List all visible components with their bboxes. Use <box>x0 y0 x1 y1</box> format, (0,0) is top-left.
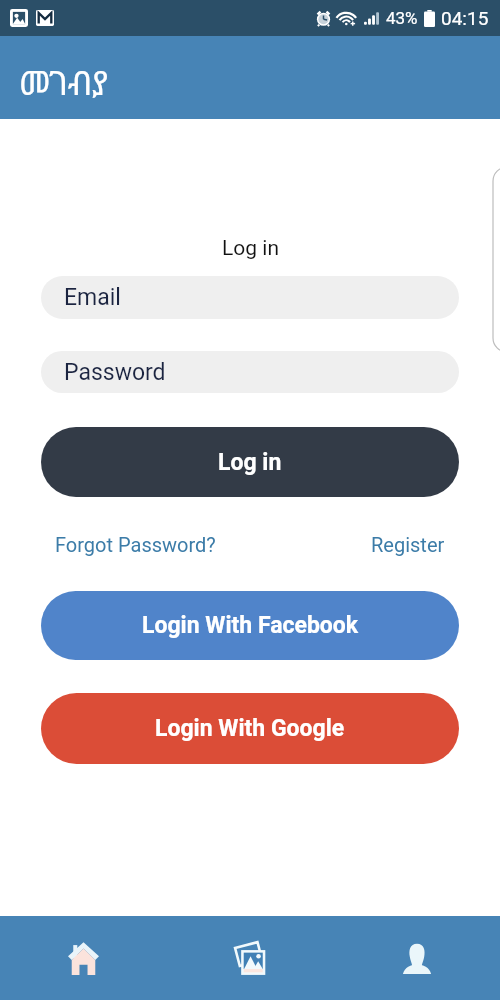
button[interactable]: Login With Facebook <box>41 591 459 660</box>
staticText: Log in <box>222 236 279 261</box>
button[interactable]: Home <box>0 916 166 1000</box>
staticText: Log in <box>218 449 282 476</box>
staticText: Register <box>371 533 445 556</box>
staticText: Login With Facebook <box>142 612 359 639</box>
button[interactable]: Log in <box>41 427 459 497</box>
button[interactable]: Register <box>371 533 445 556</box>
staticText: Password <box>64 359 166 386</box>
staticText: 43% <box>386 8 418 28</box>
staticText: Forgot Password? <box>55 533 216 556</box>
staticText: Login With Google <box>155 715 345 742</box>
button[interactable]: Forgot Password? <box>55 533 216 556</box>
button[interactable]: Photos <box>166 916 333 1000</box>
button[interactable]: Email <box>41 276 459 319</box>
button[interactable]: Profile <box>333 916 500 1000</box>
staticText: መገብያ <box>19 60 109 105</box>
button[interactable]: Password <box>41 351 459 393</box>
staticText: 04:15 <box>441 7 489 29</box>
button[interactable]: Login With Google <box>41 693 459 764</box>
staticText: Email <box>64 284 121 311</box>
